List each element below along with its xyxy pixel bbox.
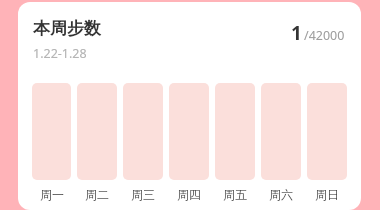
staticText: /42000 [304, 27, 345, 44]
button[interactable]: 本周步数 [18, 2, 361, 210]
staticText: 本周步数 [33, 18, 101, 39]
staticText: 1 [291, 20, 302, 46]
staticText: 周二 [85, 187, 109, 202]
staticText: 周六 [269, 187, 293, 202]
staticText: 周五 [223, 187, 247, 202]
staticText: 周一 [40, 187, 64, 202]
staticText: 1.22-1.28 [33, 45, 87, 62]
staticText: 周四 [177, 187, 201, 202]
staticText: 周日 [315, 187, 339, 202]
staticText: 周三 [131, 187, 155, 202]
